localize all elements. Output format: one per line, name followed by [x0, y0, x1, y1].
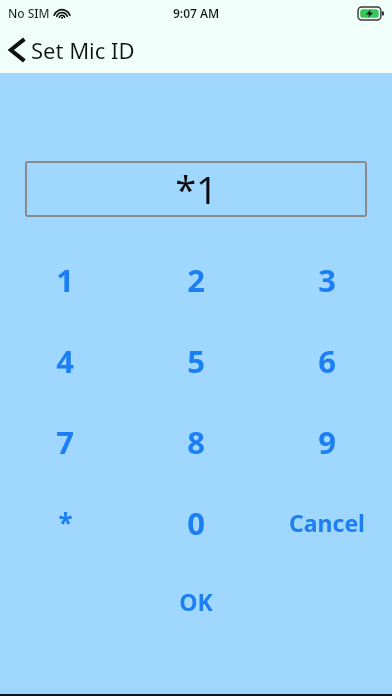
staticText: 6 — [318, 340, 336, 382]
staticText: 5 — [187, 340, 205, 382]
button[interactable]: 4 — [0, 320, 130, 401]
staticText: 1 — [56, 259, 74, 301]
other: Back — [9, 38, 24, 62]
staticText: Set Mic ID — [31, 35, 135, 65]
button[interactable]: 8 — [130, 401, 261, 482]
button[interactable]: 2 — [130, 239, 261, 320]
button[interactable]: 3 — [261, 239, 392, 320]
staticText: *1 — [175, 163, 218, 215]
button[interactable]: 1 — [0, 239, 130, 320]
button[interactable]: 7 — [0, 401, 130, 482]
staticText: 8 — [187, 421, 205, 463]
staticText: 9:07 AM — [173, 5, 220, 21]
staticText: 9 — [318, 421, 336, 463]
staticText: 0 — [187, 502, 205, 544]
button[interactable]: *1 — [25, 161, 367, 217]
staticText: * — [58, 505, 73, 540]
staticText: No SIM — [8, 5, 50, 21]
button[interactable]: 5 — [130, 320, 261, 401]
staticText: 7 — [56, 421, 74, 463]
staticText: 4 — [56, 340, 74, 382]
button[interactable]: * — [0, 482, 130, 563]
staticText: Cancel — [289, 507, 365, 538]
button[interactable]: 0 — [130, 482, 261, 563]
button[interactable]: 6 — [261, 320, 392, 401]
staticText: 2 — [187, 259, 205, 301]
button[interactable]: Cancel — [261, 482, 392, 563]
staticText: OK — [179, 586, 213, 617]
button[interactable]: OK — [130, 563, 261, 639]
button[interactable]: 9 — [261, 401, 392, 482]
staticText: 3 — [318, 259, 336, 301]
button[interactable]: Back — [0, 31, 145, 69]
